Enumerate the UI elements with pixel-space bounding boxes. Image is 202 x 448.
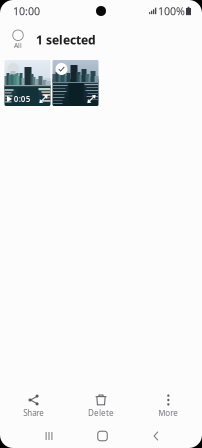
staticText: 100%	[158, 4, 185, 18]
button[interactable]: Recent apps	[30, 425, 68, 447]
staticText: More	[158, 407, 178, 418]
staticText: 0:05	[14, 94, 31, 104]
staticText: All	[14, 41, 22, 50]
button[interactable]: More	[135, 391, 202, 423]
button[interactable]: Home	[83, 425, 121, 447]
staticText: Delete	[88, 407, 114, 418]
button[interactable]: Video 0 minutes 5 seconds	[4, 60, 50, 106]
button[interactable]: Select all	[0, 22, 36, 56]
staticText: 1 selected	[36, 32, 96, 48]
staticText: Share	[23, 407, 44, 418]
staticText: 10:00	[13, 4, 40, 18]
button[interactable]: Selected video	[52, 60, 98, 106]
button[interactable]: Back	[137, 425, 175, 447]
button[interactable]: Delete	[67, 391, 135, 423]
button[interactable]: Share	[0, 391, 67, 423]
